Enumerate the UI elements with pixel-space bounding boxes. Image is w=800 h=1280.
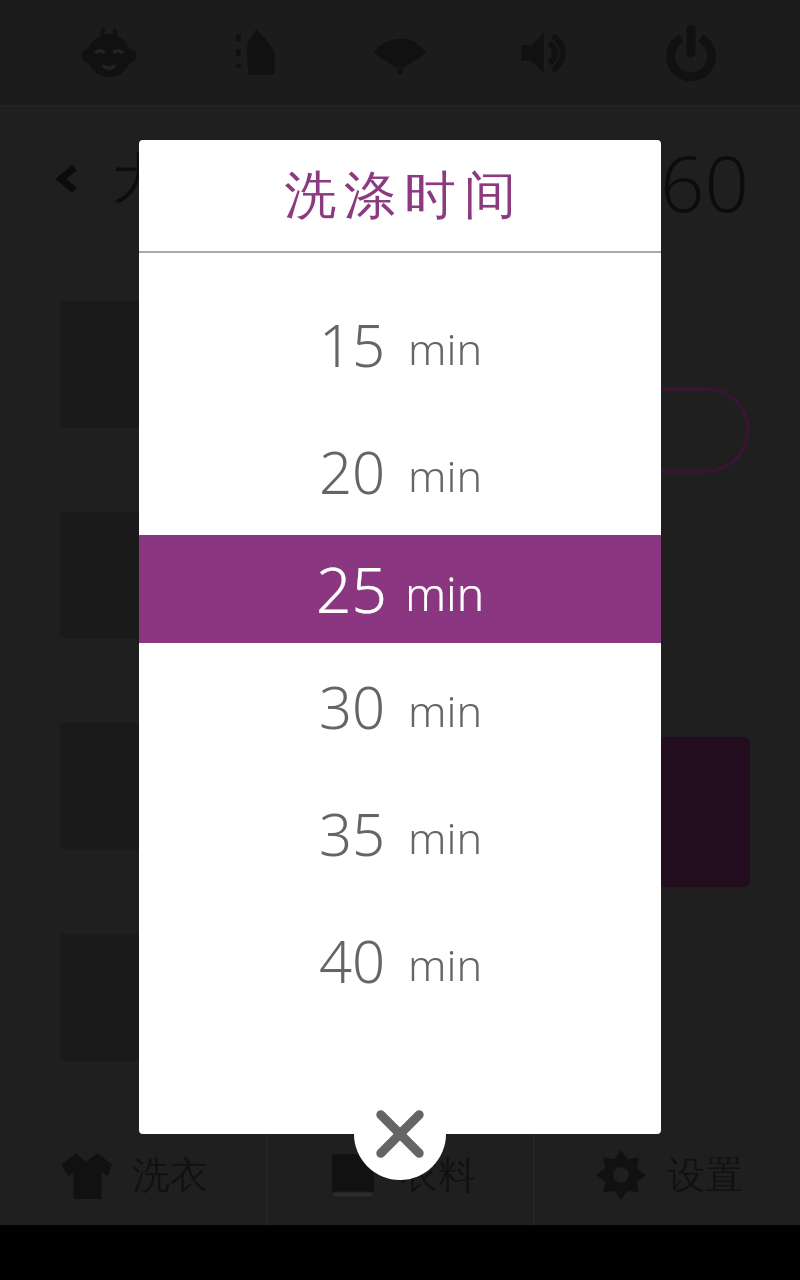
staticText: min: [408, 319, 482, 378]
button[interactable]: 20: [139, 408, 661, 535]
staticText: 除味: [536, 631, 624, 686]
button[interactable]: 脱水转速: [60, 454, 382, 639]
staticText: 20: [319, 432, 386, 511]
staticText: 1: [199, 524, 243, 628]
button[interactable]: Sound: [507, 14, 585, 92]
button[interactable]: 25: [139, 535, 661, 643]
button[interactable]: Power: [652, 14, 730, 92]
staticText: min: [408, 446, 482, 505]
staticText: 洗涤时间: [280, 163, 520, 229]
button[interactable]: 40: [139, 897, 661, 1024]
staticText: 30: [319, 667, 386, 746]
staticText: 洗涤时间: [153, 251, 289, 294]
button[interactable]: 30: [139, 643, 661, 770]
staticText: 大件洗: [112, 145, 274, 213]
staticText: 40: [319, 921, 386, 1000]
button[interactable]: 洗衣: [0, 1125, 266, 1225]
button[interactable]: 水温: [60, 665, 382, 850]
button[interactable]: Child lock: [70, 14, 148, 92]
staticText: min: [405, 562, 485, 625]
button[interactable]: 预洗: [410, 387, 750, 473]
staticText: min: [408, 935, 482, 994]
button[interactable]: 启动: [410, 737, 750, 887]
staticText: min: [408, 808, 482, 867]
button[interactable]: 35: [139, 770, 661, 897]
staticText: min: [408, 681, 482, 740]
button[interactable]: 快洗: [410, 273, 750, 359]
staticText: 35: [319, 794, 386, 873]
staticText: 设置: [667, 1151, 743, 1199]
button[interactable]: 衣料: [268, 1125, 533, 1225]
staticText: 25: [316, 547, 387, 631]
staticText: 洗衣: [132, 1151, 208, 1199]
button[interactable]: 设置: [535, 1125, 800, 1225]
button[interactable]: 免烫: [410, 501, 750, 587]
button[interactable]: 15: [139, 281, 661, 408]
staticText: 免烫: [536, 517, 624, 572]
button[interactable]: Detergent: [216, 14, 294, 92]
button[interactable]: Wi-Fi: [361, 14, 439, 92]
staticText: 衣料: [400, 1151, 476, 1199]
staticText: 15: [319, 305, 386, 384]
button[interactable]: 污渍程度: [60, 876, 382, 1061]
button[interactable]: 除味: [410, 615, 750, 701]
button[interactable]: Close: [354, 1088, 446, 1180]
button[interactable]: 洗涤时间: [60, 243, 382, 428]
staticText: 60: [660, 129, 750, 229]
